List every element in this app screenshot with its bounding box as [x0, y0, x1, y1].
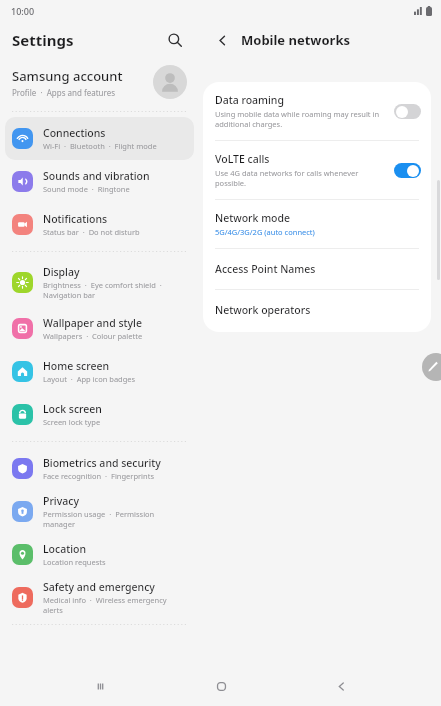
staticText: Access Point Names	[215, 262, 316, 276]
staticText: 10:00	[11, 5, 35, 17]
staticText: Sounds and vibration	[43, 169, 150, 183]
staticText: VoLTE calls	[215, 152, 270, 166]
staticText: Location	[43, 542, 87, 556]
button[interactable]: Home	[201, 666, 241, 706]
staticText: Safety and emergency	[43, 580, 155, 594]
button[interactable]: Network operators	[203, 290, 431, 332]
button[interactable]: Search	[162, 27, 188, 53]
staticText: Mobile networks	[241, 31, 351, 49]
staticText: Face recognition · Fingerprints	[43, 471, 154, 481]
button[interactable]: Network mode	[203, 200, 431, 248]
button[interactable]: Display	[5, 257, 194, 307]
button[interactable]: Toggle off	[394, 104, 421, 119]
staticText: Medical info · Wireless emergency alerts	[43, 595, 186, 615]
button[interactable]: Location	[5, 533, 194, 576]
staticText: Data roaming	[215, 93, 284, 107]
staticText: 5G/4G/3G/2G (auto connect)	[215, 227, 315, 237]
staticText: Samsung account	[12, 67, 123, 85]
staticText: Connections	[43, 126, 106, 140]
staticText: Using mobile data while roaming may resu…	[215, 109, 380, 129]
staticText: Brightness · Eye comfort shield ·	[43, 280, 162, 290]
staticText: Use 4G data networks for calls whenever …	[215, 168, 386, 188]
staticText: Notifications	[43, 212, 108, 226]
button[interactable]: Edit	[422, 353, 441, 381]
staticText: Status bar · Do not disturb	[43, 227, 140, 237]
button[interactable]: Privacy	[5, 490, 194, 533]
staticText: Navigation bar	[43, 290, 96, 300]
staticText: Screen lock type	[43, 417, 101, 427]
staticText: Lock screen	[43, 402, 102, 416]
staticText: Location requests	[43, 557, 106, 567]
staticText: Permission usage · Permission manager	[43, 509, 186, 529]
staticText: Network operators	[215, 303, 311, 317]
staticText: Home screen	[43, 359, 110, 373]
button[interactable]: Lock screen	[5, 393, 194, 436]
button[interactable]: Safety and emergency	[5, 576, 194, 619]
button[interactable]: Samsung account	[0, 58, 199, 106]
button[interactable]: Data roaming	[203, 82, 431, 140]
button[interactable]: Biometrics and security	[5, 447, 194, 490]
button[interactable]: Home screen	[5, 350, 194, 393]
staticText: Privacy	[43, 494, 79, 508]
staticText: Network mode	[215, 211, 291, 225]
button[interactable]: Recents	[80, 666, 120, 706]
staticText: Biometrics and security	[43, 456, 161, 470]
staticText: Wallpapers · Colour palette	[43, 331, 143, 341]
button[interactable]: Toggle on	[394, 163, 421, 178]
staticText: Settings	[12, 30, 74, 50]
staticText: Layout · App icon badges	[43, 374, 136, 384]
button[interactable]: Sounds and vibration	[5, 160, 194, 203]
button[interactable]: Back	[321, 666, 361, 706]
button[interactable]: Connections	[5, 117, 194, 160]
button[interactable]: Back	[211, 29, 233, 51]
button[interactable]: Wallpaper and style	[5, 307, 194, 350]
staticText: Sound mode · Ringtone	[43, 184, 130, 194]
button[interactable]: Notifications	[5, 203, 194, 246]
button[interactable]: VoLTE calls	[203, 141, 431, 199]
staticText: Profile · Apps and features	[12, 87, 116, 98]
staticText: Display	[43, 265, 80, 279]
staticText: Wi-Fi · Bluetooth · Flight mode	[43, 141, 157, 151]
staticText: Wallpaper and style	[43, 316, 142, 330]
button[interactable]: Access Point Names	[203, 249, 431, 289]
